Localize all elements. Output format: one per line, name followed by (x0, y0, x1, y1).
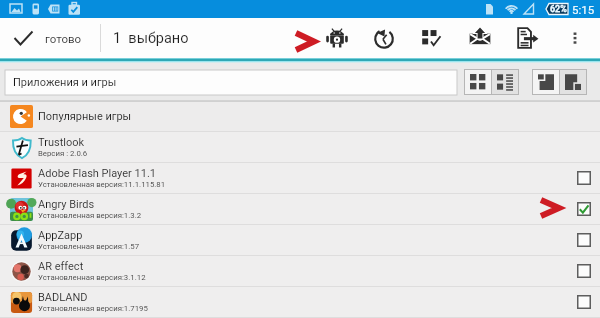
staticText: Версия : 2.0.6 (38, 149, 88, 158)
button[interactable]: Trustlook (0, 132, 600, 162)
button[interactable]: Приложения и игры (5, 70, 457, 95)
button[interactable]: AR effect (0, 256, 600, 286)
button[interactable]: AppZapp (0, 225, 600, 255)
staticText: Установленная версия:3.1.12 (38, 273, 146, 282)
staticText: Установленная версия:11.1.115.81 (38, 180, 166, 189)
staticText: Установленная версия:1.57 (38, 242, 140, 251)
staticText: AR effect (38, 260, 84, 273)
button[interactable]: Sort ascending (533, 70, 559, 94)
button[interactable]: Angry Birds (0, 194, 600, 224)
staticText: Установленная версия:1.7195 (38, 304, 148, 313)
button[interactable]: Select Angry Birds (569, 194, 599, 224)
staticText: BADLAND (38, 291, 88, 304)
staticText: 5:15 (572, 3, 595, 16)
staticText: AppZapp (38, 229, 83, 242)
staticText: 62% (550, 4, 567, 15)
button[interactable]: Select AppZapp (569, 225, 599, 255)
button[interactable]: Популярные игры (0, 102, 600, 131)
button[interactable]: History (364, 18, 404, 58)
staticText: Установленная версия:1.3.2 (38, 211, 142, 220)
staticText: Популярные игры (38, 110, 132, 123)
button[interactable]: Export (507, 18, 547, 58)
button[interactable]: Select Adobe Flash Player 11.1 (569, 163, 599, 193)
staticText: Приложения и игры (13, 76, 117, 89)
button[interactable]: BADLAND (0, 287, 600, 317)
staticText: Adobe Flash Player 11.1 (38, 167, 156, 180)
button[interactable]: готово (0, 18, 95, 58)
button[interactable]: Adobe Flash Player 11.1 (0, 163, 600, 193)
button[interactable]: Android apps (317, 18, 357, 58)
button[interactable]: Grid view (465, 70, 491, 94)
button[interactable]: Sort descending (560, 70, 586, 94)
button[interactable]: More options (555, 18, 595, 58)
button[interactable]: List view (492, 70, 518, 94)
staticText: Angry Birds (38, 198, 95, 211)
staticText: Trustlook (38, 136, 85, 149)
staticText: готово (45, 32, 82, 45)
button[interactable]: Select AR effect (569, 256, 599, 286)
staticText: 1 выбрано (113, 30, 189, 47)
button[interactable]: Send mail (460, 18, 500, 58)
button[interactable]: Select BADLAND (569, 287, 599, 317)
button[interactable]: Select all (411, 18, 451, 58)
